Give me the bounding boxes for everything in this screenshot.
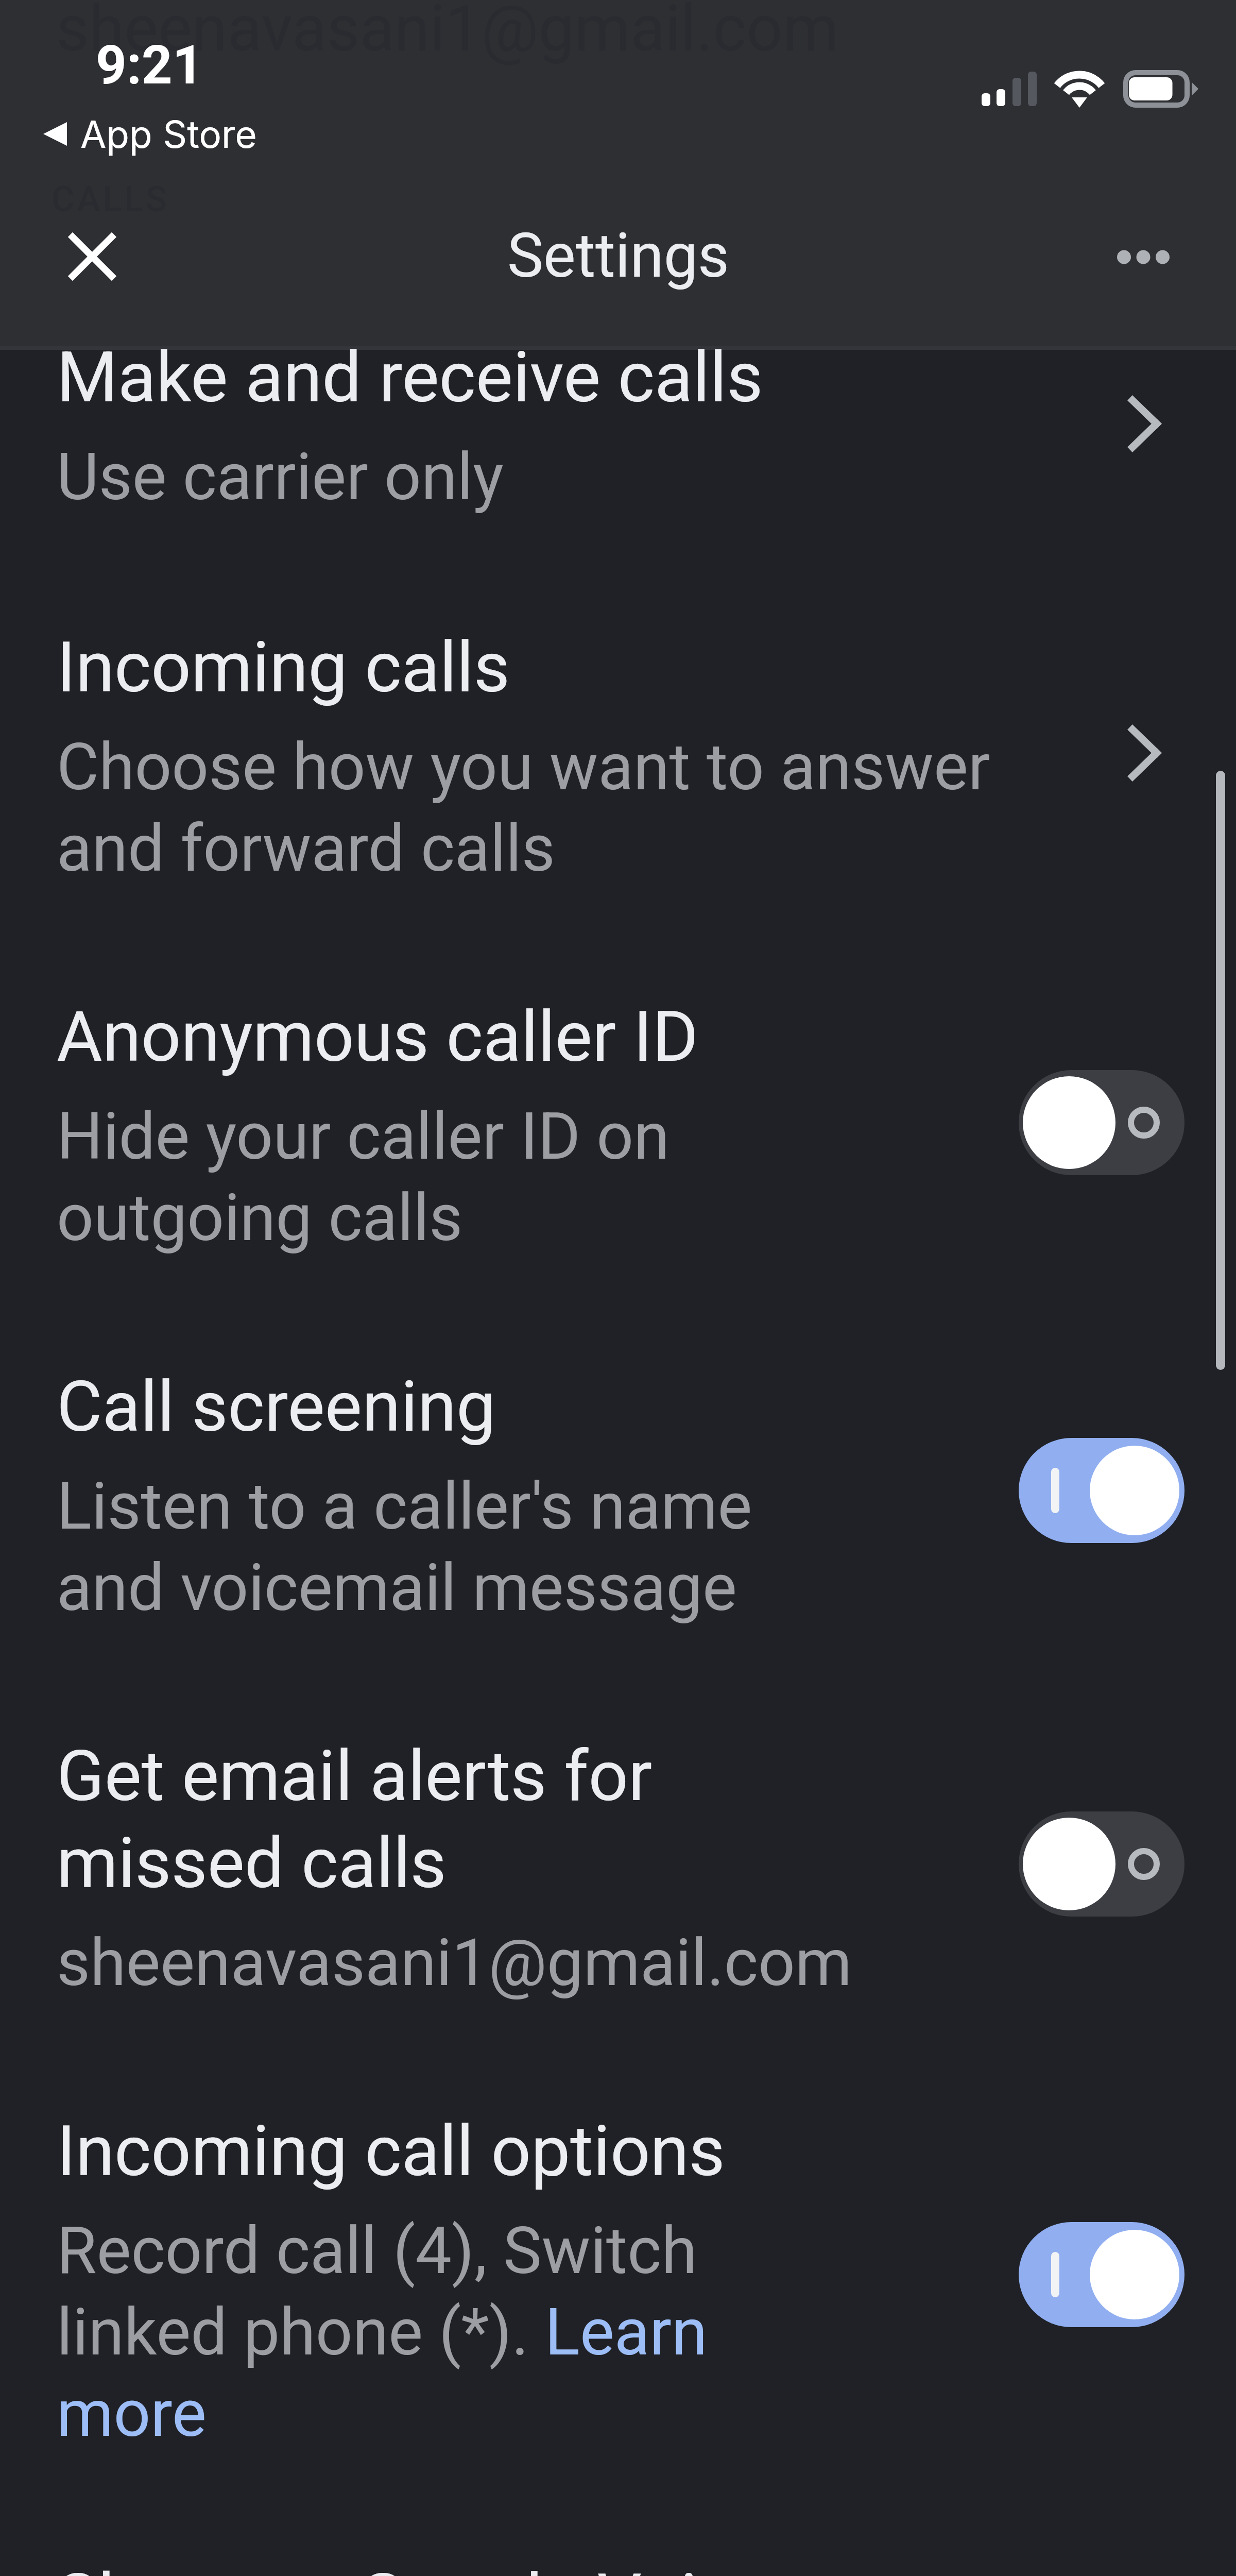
staticText: sheenavasani1@gmail.com	[57, 1925, 1015, 2001]
button[interactable]: Switch on	[1019, 1438, 1184, 1543]
staticText: Settings	[507, 221, 729, 292]
staticText: Call screening	[57, 1366, 1015, 1448]
staticText: Incoming calls	[57, 626, 1015, 708]
button[interactable]: Anonymous caller ID	[0, 992, 1236, 1265]
button[interactable]: App Store	[41, 111, 244, 157]
staticText: Anonymous caller ID	[57, 996, 1015, 1078]
staticText: Record call (4), Switch linked phone (*)…	[57, 2213, 1015, 2452]
staticText: Use carrier only	[57, 439, 1015, 515]
staticText: Get email alerts for missed calls	[57, 1735, 1015, 1904]
button[interactable]: Switch on	[1019, 2222, 1184, 2327]
button[interactable]: Make and receive calls	[0, 330, 1236, 531]
button[interactable]: Open	[1103, 382, 1186, 465]
staticText: App Store	[80, 111, 257, 157]
staticText: 9:21	[96, 34, 203, 97]
staticText: Show my Google Voice number as caller ID…	[57, 2558, 1015, 2576]
staticText: Choose how you want to answer and forwar…	[57, 729, 1015, 887]
button[interactable]: Open	[1103, 711, 1186, 794]
button[interactable]: Incoming call options	[0, 2102, 1236, 2452]
button[interactable]: Switch off	[1019, 1070, 1184, 1175]
button[interactable]: Close	[51, 215, 133, 298]
staticText: Make and receive calls	[57, 336, 1015, 418]
button[interactable]: Switch off	[1019, 1811, 1184, 1917]
button[interactable]: Get email alerts for missed calls	[0, 1731, 1236, 2004]
staticText: Hide your caller ID on outgoing calls	[57, 1098, 1015, 1256]
button[interactable]: Incoming calls	[0, 623, 1236, 896]
button[interactable]: More options	[1102, 216, 1184, 298]
button[interactable]: Show my Google Voice number as caller ID…	[0, 2550, 1236, 2576]
button[interactable]: Call screening	[0, 1360, 1236, 1633]
staticText: sheenavasani1@gmail.com	[56, 0, 839, 66]
staticText: Listen to a caller's name and voicemail …	[57, 1468, 1015, 1626]
staticText: Incoming call options	[57, 2110, 1015, 2192]
